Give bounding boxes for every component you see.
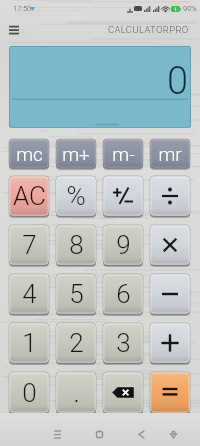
staticText: 1 [22,328,37,358]
button[interactable]: Recents [46,423,68,445]
button[interactable]: Hide keyboard [162,423,184,445]
button[interactable]: . [56,372,96,413]
staticText: 17:50 [13,4,32,13]
staticText: 3 [116,328,131,358]
button[interactable]: 9 [103,225,143,265]
button[interactable]: Backspace [103,372,143,413]
staticText: 6 [116,279,131,309]
button[interactable]: mc [9,139,49,168]
staticText: m- [112,143,135,165]
staticText: 4 [22,279,37,309]
button[interactable]: m- [103,139,143,168]
staticText: % [66,181,86,211]
staticText: CALCULATORPRO [108,24,189,35]
button[interactable]: 6 [103,274,143,314]
button[interactable]: AC [9,176,49,216]
staticText: 90% [183,4,197,13]
staticText: 0 [22,378,37,408]
button[interactable]: 4 [9,274,49,314]
staticText: 0 [167,59,189,104]
button[interactable]: Multiply [150,225,190,265]
button[interactable]: Display [9,46,191,128]
button[interactable]: 7 [9,225,49,265]
button[interactable]: 2 [56,323,96,363]
button[interactable]: 0 [9,372,49,413]
button[interactable]: 3 [103,323,143,363]
button[interactable]: m+ [56,139,96,168]
staticText: 5 [69,279,84,309]
button[interactable]: mr [150,139,190,168]
button[interactable]: 8 [56,225,96,265]
staticText: . [73,378,80,408]
button[interactable]: Equals [150,372,190,413]
button[interactable]: Back [130,423,152,445]
staticText: 8 [69,230,84,260]
button[interactable]: Menu [2,17,26,41]
staticText: m+ [62,143,90,165]
staticText: 9 [116,230,131,260]
button[interactable]: Add [150,323,190,363]
button[interactable]: Home [88,423,110,445]
button[interactable]: Plus minus [103,176,143,216]
staticText: AC [13,181,46,211]
staticText: mc [16,143,43,165]
staticText: 2 [69,328,84,358]
button[interactable]: % [56,176,96,216]
staticText: 7 [22,230,37,260]
button[interactable]: Subtract [150,274,190,314]
button[interactable]: 1 [9,323,49,363]
button[interactable]: 5 [56,274,96,314]
button[interactable]: Divide [150,176,190,216]
staticText: mr [158,143,182,165]
